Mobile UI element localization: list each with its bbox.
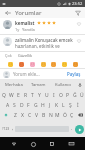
- staticText: İ: [77, 102, 79, 109]
- staticText: R: [24, 92, 28, 99]
- button[interactable]: Backspace: [75, 110, 85, 120]
- button[interactable]: Emoji: [7, 61, 13, 67]
- button[interactable]: Yorum ekle...: [0, 69, 85, 79]
- button[interactable]: Back: [9, 139, 19, 149]
- button[interactable]: L: [60, 100, 67, 110]
- button[interactable]: X: [19, 110, 26, 120]
- staticText: C: [28, 112, 32, 119]
- button[interactable]: kemalist: [0, 18, 85, 34]
- button[interactable]: İ: [74, 100, 81, 110]
- staticText: Güzellik: [18, 53, 33, 58]
- button[interactable]: E: [15, 90, 22, 100]
- staticText: P: [66, 92, 70, 99]
- button[interactable]: H: [39, 100, 46, 110]
- staticText: G: [34, 102, 38, 109]
- staticText: ,: [12, 125, 14, 132]
- staticText: Merhaba: [5, 82, 23, 88]
- button[interactable]: ?123: [1, 120, 10, 137]
- staticText: F: [27, 102, 30, 109]
- button[interactable]: M: [54, 110, 61, 120]
- button[interactable]: U: [43, 90, 50, 100]
- button[interactable]: Ö: [61, 110, 68, 120]
- button[interactable]: Ğ: [71, 90, 78, 100]
- button[interactable]: Paylaş: [66, 71, 82, 77]
- button[interactable]: Like: [75, 37, 82, 44]
- button[interactable]: W: [8, 90, 15, 100]
- button[interactable]: Shift: [0, 110, 11, 120]
- button[interactable]: I: [50, 90, 57, 100]
- staticText: 1y: [15, 27, 20, 32]
- staticText: Kullanıcı: [55, 82, 72, 88]
- button[interactable]: Q: [0, 90, 8, 100]
- button[interactable]: Tamam: [26, 79, 51, 90]
- button[interactable]: .: [69, 120, 74, 137]
- button[interactable]: Ü: [78, 90, 85, 100]
- button[interactable]: G: [32, 100, 39, 110]
- button[interactable]: O: [57, 90, 64, 100]
- button[interactable]: D: [18, 100, 25, 110]
- button[interactable]: zalimalin Konuşacak emcek: [0, 35, 85, 51]
- staticText: Ç: [70, 112, 74, 119]
- button[interactable]: Merhaba: [2, 79, 26, 90]
- button[interactable]: ,: [10, 120, 15, 137]
- staticText: Ğ: [73, 92, 77, 99]
- button[interactable]: T: [29, 90, 36, 100]
- staticText: T: [31, 92, 34, 99]
- button[interactable]: A: [4, 100, 11, 110]
- button[interactable]: Çok: [4, 53, 13, 58]
- button[interactable]: Z: [11, 110, 19, 120]
- button[interactable]: Recent apps: [47, 139, 57, 149]
- staticText: K: [55, 102, 59, 109]
- button[interactable]: Ç: [68, 110, 75, 120]
- button[interactable]: R: [22, 90, 29, 100]
- button[interactable]: Emoji: [18, 61, 24, 67]
- button[interactable]: Home: [28, 139, 38, 149]
- button[interactable]: Back: [3, 8, 12, 17]
- button[interactable]: C: [26, 110, 33, 120]
- staticText: .: [71, 125, 73, 132]
- button[interactable]: Kullanıcı: [51, 79, 76, 90]
- staticText: Y: [38, 92, 41, 99]
- staticText: S: [13, 102, 16, 109]
- button[interactable]: Emoji: [29, 61, 35, 67]
- button[interactable]: V: [33, 110, 40, 120]
- staticText: Paylaş: [67, 71, 81, 77]
- staticText: Ş: [69, 102, 72, 109]
- button[interactable]: Y: [36, 90, 43, 100]
- button[interactable]: Send: [74, 124, 84, 134]
- button[interactable]: P: [64, 90, 71, 100]
- staticText: Yorumlar: [15, 9, 42, 17]
- button[interactable]: Ş: [67, 100, 74, 110]
- staticText: E: [17, 92, 20, 99]
- staticText: Q: [2, 92, 6, 99]
- staticText: X: [21, 112, 24, 119]
- staticText: M: [55, 112, 60, 119]
- button[interactable]: Emoji: [40, 61, 46, 67]
- staticText: 23:52: [72, 1, 83, 6]
- staticText: U: [45, 92, 49, 99]
- button[interactable]: Emoji: [61, 61, 67, 67]
- button[interactable]: J: [46, 100, 53, 110]
- staticText: I: [53, 92, 55, 99]
- button[interactable]: N: [47, 110, 54, 120]
- button[interactable]: B: [40, 110, 47, 120]
- staticText: V: [35, 112, 39, 119]
- button[interactable]: Voice input: [76, 79, 83, 90]
- staticText: Çok: [5, 53, 12, 58]
- button[interactable]: Emoji: [50, 61, 56, 67]
- staticText: Tamam: [31, 82, 46, 88]
- button[interactable]: Güzellik: [17, 53, 34, 58]
- button[interactable]: Hide keyboard: [66, 139, 76, 149]
- staticText: Z: [14, 112, 17, 119]
- button[interactable]: Like: [75, 20, 82, 27]
- staticText: kemalist: [15, 20, 35, 26]
- staticText: N: [49, 112, 53, 119]
- button[interactable]: Filter: [73, 8, 82, 17]
- button[interactable]: Emoji: [72, 61, 78, 67]
- staticText: H: [41, 102, 45, 109]
- button[interactable]: S: [11, 100, 18, 110]
- staticText: D: [20, 102, 24, 109]
- button[interactable]: K: [53, 100, 60, 110]
- button[interactable]: F: [25, 100, 32, 110]
